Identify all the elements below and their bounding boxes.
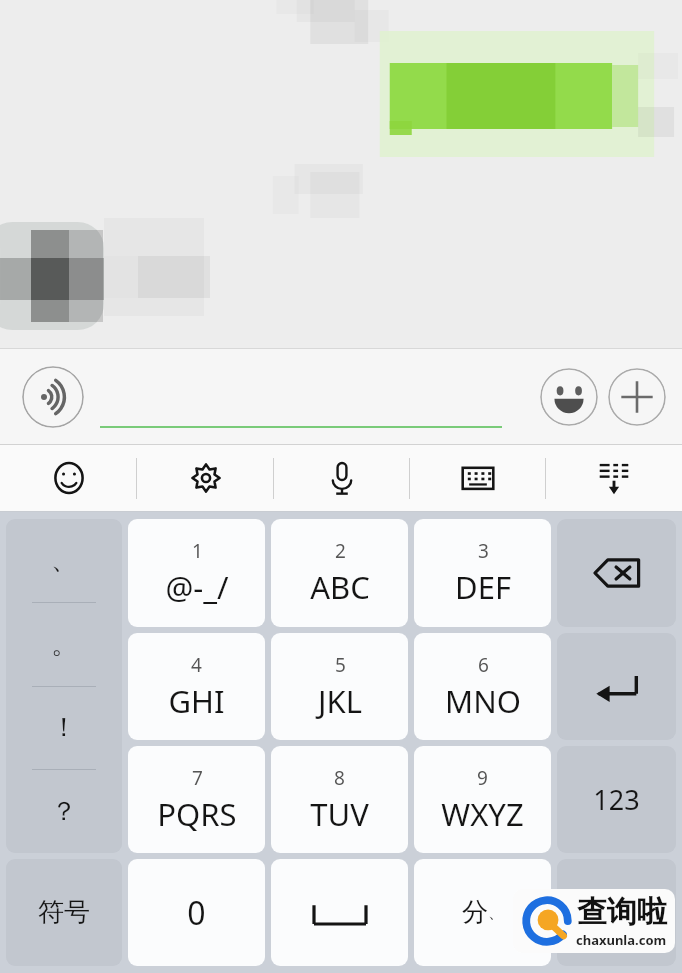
button[interactable]: 1 xyxy=(128,519,265,627)
button[interactable]: 8 xyxy=(271,746,408,853)
staticText: 5 xyxy=(335,652,346,678)
button[interactable] xyxy=(271,859,408,966)
staticText: TUV xyxy=(310,793,369,835)
button[interactable]: 、 xyxy=(6,519,122,853)
staticText: 。 xyxy=(51,628,77,661)
button[interactable]: 5 xyxy=(271,633,408,740)
staticText: MNO xyxy=(445,680,521,722)
button[interactable]: Enter xyxy=(557,633,676,740)
staticText: 1 xyxy=(192,538,203,564)
button[interactable] xyxy=(100,366,502,428)
staticText: GHI xyxy=(168,680,225,722)
button[interactable]: 3 xyxy=(414,519,551,627)
staticText: 4 xyxy=(191,652,202,678)
button[interactable]: 123 xyxy=(557,746,676,853)
button[interactable]: Hide keyboard xyxy=(546,445,682,511)
staticText: ABC xyxy=(310,566,370,608)
staticText: @-_/ xyxy=(165,566,229,608)
staticText: ！ xyxy=(51,711,77,744)
staticText: 123 xyxy=(593,781,640,818)
button[interactable]: 9 xyxy=(414,746,551,853)
staticText: 8 xyxy=(334,765,345,791)
staticText: 3 xyxy=(478,538,489,564)
button[interactable]: Voice input xyxy=(22,366,84,428)
button[interactable]: Backspace xyxy=(557,519,676,627)
staticText: 6 xyxy=(478,652,489,678)
button[interactable]: 6 xyxy=(414,633,551,740)
button[interactable]: More xyxy=(608,368,666,426)
button[interactable]: 4 xyxy=(128,633,265,740)
button[interactable]: 7 xyxy=(128,746,265,853)
staticText: JKL xyxy=(318,680,362,722)
staticText: PQRS xyxy=(157,793,237,835)
button[interactable]: 2 xyxy=(271,519,408,627)
button[interactable]: Voice xyxy=(274,445,410,511)
button[interactable]: 符号 xyxy=(6,859,122,966)
staticText: ？ xyxy=(51,795,77,828)
staticText: 符号 xyxy=(38,896,90,929)
button[interactable]: 0 xyxy=(128,859,265,966)
button[interactable]: Settings xyxy=(137,445,274,511)
staticText: 9 xyxy=(477,765,488,791)
button[interactable] xyxy=(557,859,676,966)
staticText: DEF xyxy=(455,566,511,608)
staticText: 0 xyxy=(187,891,206,935)
button[interactable]: Emoticons xyxy=(0,445,137,511)
button[interactable]: Keyboard xyxy=(410,445,546,511)
staticText: 7 xyxy=(192,765,203,791)
staticText: 2 xyxy=(335,538,346,564)
staticText: 分 xyxy=(462,896,488,929)
staticText: 、 xyxy=(488,903,504,923)
staticText: 查询啦 xyxy=(577,893,667,931)
staticText: WXYZ xyxy=(441,793,524,835)
staticText: 、 xyxy=(51,544,77,577)
staticText: chaxunla.com xyxy=(576,931,667,949)
button[interactable]: Emoji xyxy=(540,368,598,426)
button[interactable]: 分 xyxy=(414,859,551,966)
